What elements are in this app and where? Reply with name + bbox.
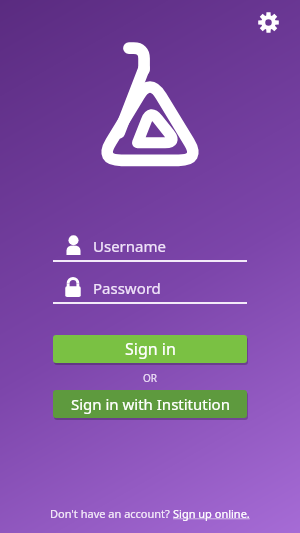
staticText: Sign in [125,338,176,360]
staticText: Sign up online. [173,506,250,521]
staticText: OR [53,371,247,385]
button[interactable]: Sign in [53,335,247,363]
staticText: Don't have an account? [50,506,173,521]
staticText: Username [93,236,166,256]
staticText: Password [93,278,161,298]
button[interactable]: Password [53,273,247,304]
button[interactable]: Settings [251,5,285,39]
button[interactable]: Don't have an account? [50,506,250,521]
button[interactable]: Sign in with Institution [53,390,247,418]
staticText: Sign in with Institution [71,394,230,414]
button[interactable]: Username [53,231,247,262]
